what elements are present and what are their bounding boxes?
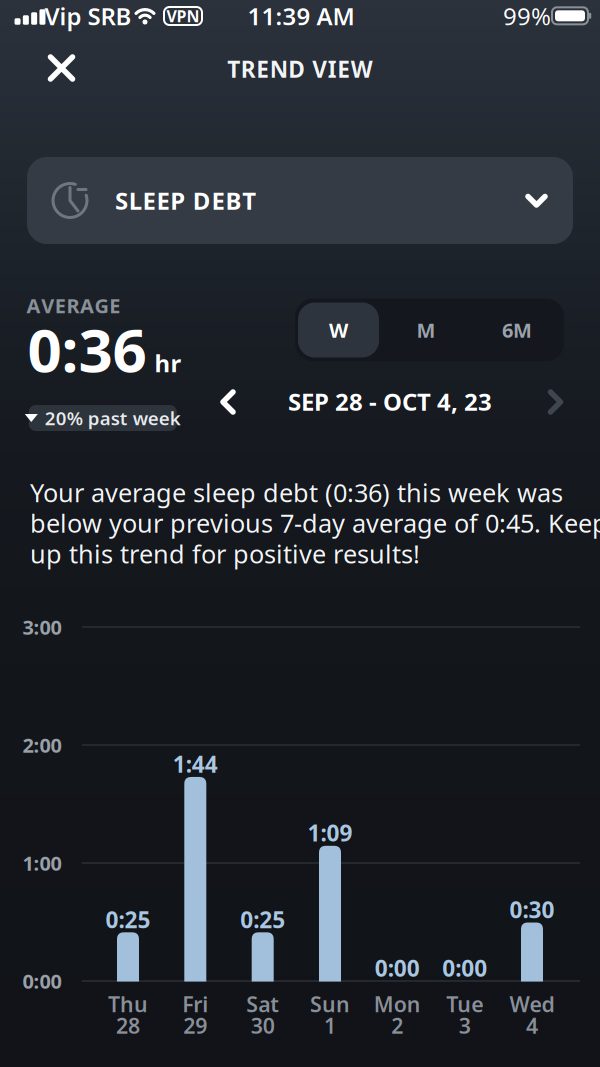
- staticText: 4: [526, 1011, 538, 1040]
- staticText: up this trend for positive results!: [30, 537, 420, 570]
- staticText: E: [55, 292, 66, 319]
- staticText: P: [170, 185, 185, 216]
- staticText: S: [115, 185, 128, 216]
- staticText: 3: [459, 1011, 471, 1040]
- staticText: R: [66, 292, 79, 319]
- staticText: VPN: [166, 5, 199, 27]
- staticText: 0:00: [22, 968, 61, 994]
- staticText: Mon: [374, 990, 421, 1018]
- staticText: Thu: [108, 990, 148, 1018]
- button[interactable]: W: [298, 302, 379, 357]
- staticText: 0:30: [509, 894, 554, 924]
- staticText: 0:00: [375, 953, 420, 983]
- staticText: 11:39 AM: [247, 0, 354, 32]
- staticText: V: [312, 54, 327, 84]
- staticText: 0:25: [240, 904, 285, 934]
- staticText: D: [193, 185, 211, 216]
- staticText: 2: [391, 1011, 403, 1040]
- staticText: 0:36: [27, 309, 146, 389]
- staticText: 20% past week: [45, 406, 181, 430]
- staticText: W: [329, 317, 348, 343]
- button[interactable]: Close: [49, 55, 74, 80]
- button[interactable]: M: [385, 302, 466, 357]
- staticText: Sat: [246, 990, 279, 1018]
- staticText: below your previous 7-day average of 0:4…: [30, 506, 600, 540]
- staticText: T: [242, 185, 256, 216]
- staticText: R: [241, 54, 256, 84]
- button[interactable]: S: [27, 157, 573, 244]
- staticText: 2:00: [22, 732, 61, 758]
- button[interactable]: Previous week: [221, 390, 235, 413]
- staticText: E: [156, 185, 169, 216]
- staticText: V: [41, 292, 54, 319]
- staticText: E: [337, 54, 350, 84]
- staticText: SEP 28 - OCT 4, 23: [288, 386, 492, 417]
- staticText: I: [328, 54, 337, 84]
- staticText: hr: [154, 347, 181, 379]
- button[interactable]: Next week: [548, 390, 562, 413]
- staticText: W: [351, 54, 373, 84]
- staticText: M: [416, 317, 435, 343]
- staticText: Fri: [182, 990, 208, 1018]
- staticText: Tue: [446, 990, 483, 1018]
- staticText: E: [212, 185, 225, 216]
- staticText: Your average sleep debt (0:36) this week…: [30, 475, 563, 509]
- staticText: L: [129, 185, 142, 216]
- staticText: A: [27, 292, 41, 319]
- staticText: E: [143, 185, 156, 216]
- staticText: B: [225, 185, 241, 216]
- staticText: N: [270, 54, 288, 84]
- staticText: 6M: [502, 317, 532, 343]
- staticText: E: [109, 292, 120, 319]
- staticText: 30: [251, 1011, 275, 1040]
- staticText: Vip SRB: [44, 0, 131, 32]
- staticText: G: [95, 292, 109, 319]
- staticText: A: [80, 292, 94, 319]
- staticText: 1:44: [173, 749, 218, 779]
- staticText: 3:00: [22, 614, 61, 640]
- staticText: Wed: [509, 990, 554, 1018]
- staticText: 29: [183, 1011, 207, 1040]
- staticText: T: [227, 54, 240, 84]
- staticText: 1: [324, 1011, 336, 1040]
- staticText: D: [288, 54, 305, 84]
- staticText: 0:00: [442, 953, 487, 983]
- staticText: 1:00: [22, 850, 61, 876]
- staticText: E: [256, 54, 269, 84]
- staticText: 28: [116, 1011, 140, 1040]
- button[interactable]: 6M: [476, 302, 557, 357]
- staticText: 0:25: [105, 904, 150, 934]
- staticText: 1:09: [307, 818, 352, 848]
- staticText: 99%: [503, 0, 551, 32]
- staticText: Sun: [310, 990, 350, 1018]
